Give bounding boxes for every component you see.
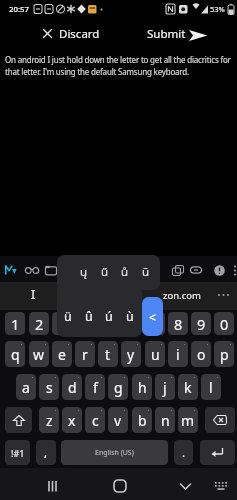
- staticText: h: [138, 378, 147, 397]
- staticText: r: [82, 345, 88, 364]
- staticText: 8: [174, 314, 183, 334]
- button[interactable]: y: [121, 341, 141, 367]
- button[interactable]: [36, 23, 58, 44]
- button[interactable]: [61, 440, 168, 465]
- button[interactable]: [173, 474, 197, 498]
- button[interactable]: r: [75, 341, 95, 367]
- button[interactable]: l: [201, 374, 221, 400]
- staticText: y: [127, 345, 135, 364]
- button[interactable]: h: [132, 374, 152, 400]
- staticText: <: [149, 309, 156, 325]
- button[interactable]: [143, 22, 229, 44]
- button[interactable]: [0, 282, 237, 310]
- staticText: x: [68, 411, 76, 430]
- staticText: 6: [127, 314, 136, 334]
- button[interactable]: c: [85, 407, 105, 433]
- button[interactable]: k: [178, 374, 198, 400]
- button[interactable]: a: [16, 374, 36, 400]
- button[interactable]: 1: [5, 312, 25, 335]
- staticText: 3: [58, 314, 67, 334]
- button[interactable]: 3: [52, 312, 72, 335]
- staticText: zon.com: [163, 289, 201, 302]
- button[interactable]: 7: [145, 312, 165, 335]
- button[interactable]: q: [5, 341, 25, 367]
- button[interactable]: 5: [98, 312, 118, 335]
- staticText: w: [33, 345, 45, 364]
- staticText: 4: [81, 314, 90, 334]
- button[interactable]: [5, 440, 30, 465]
- staticText: 1: [11, 314, 20, 334]
- button[interactable]: [3, 262, 19, 278]
- button[interactable]: <: [142, 297, 163, 336]
- button[interactable]: [41, 474, 65, 498]
- button[interactable]: 6: [121, 312, 141, 335]
- staticText: v: [114, 411, 122, 430]
- staticText: û: [85, 308, 93, 325]
- staticText: English (US): [95, 448, 134, 458]
- staticText: o: [197, 345, 206, 364]
- staticText: ,: [44, 445, 48, 461]
- button[interactable]: [200, 440, 235, 465]
- staticText: b: [138, 411, 147, 430]
- staticText: ů: [121, 264, 129, 280]
- button[interactable]: [170, 262, 186, 278]
- staticText: ū: [142, 264, 150, 280]
- staticText: 2: [35, 314, 44, 334]
- button[interactable]: .: [174, 440, 193, 465]
- staticText: d: [68, 378, 77, 397]
- button[interactable]: t: [98, 341, 118, 367]
- staticText: u: [151, 345, 160, 364]
- button[interactable]: [42, 262, 59, 278]
- button[interactable]: b: [132, 407, 152, 433]
- button[interactable]: m: [178, 407, 198, 433]
- staticText: !#1: [11, 447, 25, 459]
- staticText: a: [22, 378, 30, 397]
- staticText: j: [163, 378, 167, 397]
- button[interactable]: e: [52, 341, 72, 367]
- staticText: ü: [64, 308, 72, 325]
- button[interactable]: f: [85, 374, 105, 400]
- button[interactable]: 0: [214, 312, 234, 335]
- staticText: Discard: [59, 26, 100, 42]
- button[interactable]: n: [155, 407, 175, 433]
- staticText: f: [93, 378, 98, 397]
- button[interactable]: s: [39, 374, 59, 400]
- button[interactable]: [23, 262, 40, 278]
- button[interactable]: x: [62, 407, 82, 433]
- button[interactable]: [212, 262, 226, 278]
- staticText: c: [92, 411, 99, 430]
- button[interactable]: j: [155, 374, 175, 400]
- button[interactable]: u: [145, 341, 165, 367]
- button[interactable]: [5, 407, 32, 433]
- staticText: p: [220, 345, 229, 364]
- button[interactable]: [205, 407, 235, 433]
- staticText: On android I just hold down the letter t…: [5, 54, 231, 65]
- button[interactable]: z: [39, 407, 59, 433]
- button[interactable]: i: [168, 341, 188, 367]
- button[interactable]: [210, 476, 232, 496]
- button[interactable]: v: [108, 407, 128, 433]
- staticText: Submit: [147, 26, 186, 42]
- button[interactable]: [188, 262, 204, 278]
- button[interactable]: 4: [75, 312, 95, 335]
- staticText: 20:57: [9, 4, 29, 15]
- staticText: .: [182, 445, 186, 461]
- button[interactable]: d: [62, 374, 82, 400]
- button[interactable]: 2: [29, 312, 49, 335]
- button[interactable]: o: [191, 341, 211, 367]
- button[interactable]: [108, 474, 132, 498]
- staticText: 0: [220, 314, 229, 334]
- staticText: q: [11, 345, 20, 364]
- staticText: e: [58, 345, 66, 364]
- staticText: z: [46, 411, 53, 430]
- button[interactable]: ,: [36, 440, 56, 465]
- staticText: t: [105, 345, 111, 364]
- staticText: n: [161, 411, 170, 430]
- button[interactable]: 9: [191, 312, 211, 335]
- button[interactable]: g: [108, 374, 128, 400]
- button[interactable]: 8: [168, 312, 188, 335]
- button[interactable]: w: [29, 341, 49, 367]
- button[interactable]: p: [214, 341, 234, 367]
- staticText: ú: [105, 308, 113, 325]
- staticText: 9: [197, 314, 206, 334]
